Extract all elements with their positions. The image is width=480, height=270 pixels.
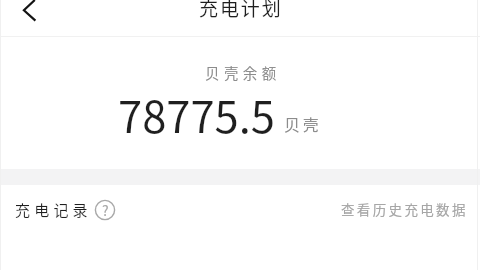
staticText: 充电计划	[199, 0, 283, 22]
button[interactable]: Back	[12, 0, 48, 29]
staticText: 78775.5	[118, 83, 275, 146]
staticText: 充电记录	[15, 199, 92, 221]
staticText: 贝壳余额	[205, 62, 281, 83]
staticText: 贝壳	[284, 112, 322, 135]
button[interactable]: 查看历史充电数据	[341, 199, 468, 219]
staticText: ?	[102, 200, 109, 220]
other: Help	[95, 200, 115, 220]
button[interactable]: 充电记录	[15, 199, 115, 221]
